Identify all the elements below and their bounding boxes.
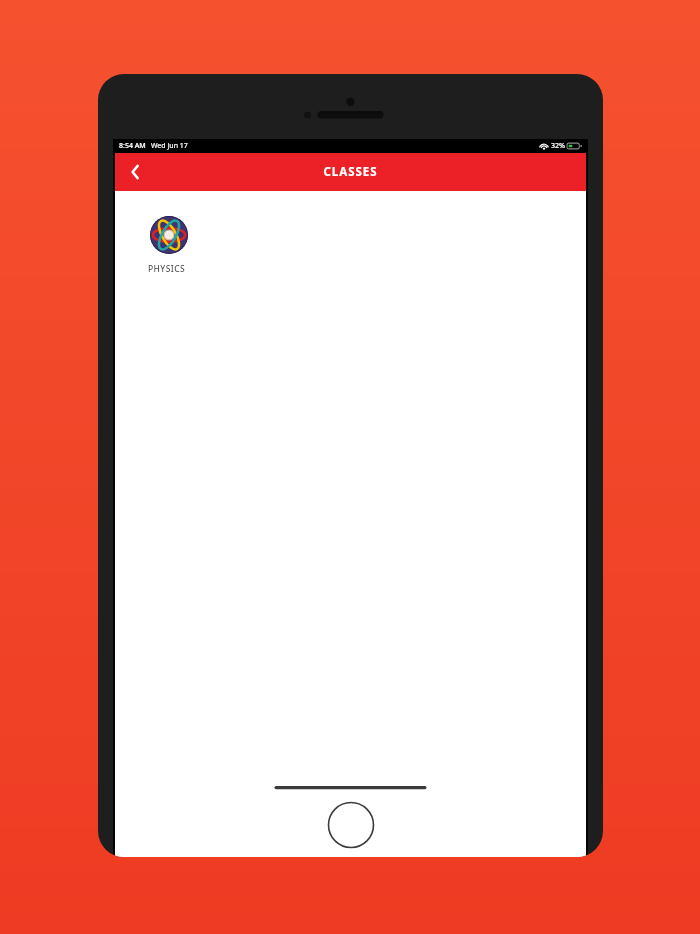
staticText: PHYSICS [148, 263, 186, 275]
staticText: 8:54 AM [119, 141, 146, 151]
button[interactable]: Home [327, 801, 375, 849]
staticText: 32% [551, 141, 565, 151]
button[interactable]: PHYSICS [148, 216, 228, 275]
staticText: CLASSES [323, 164, 378, 180]
staticText: Wed Jun 17 [151, 141, 188, 151]
button[interactable]: Back [115, 153, 155, 191]
